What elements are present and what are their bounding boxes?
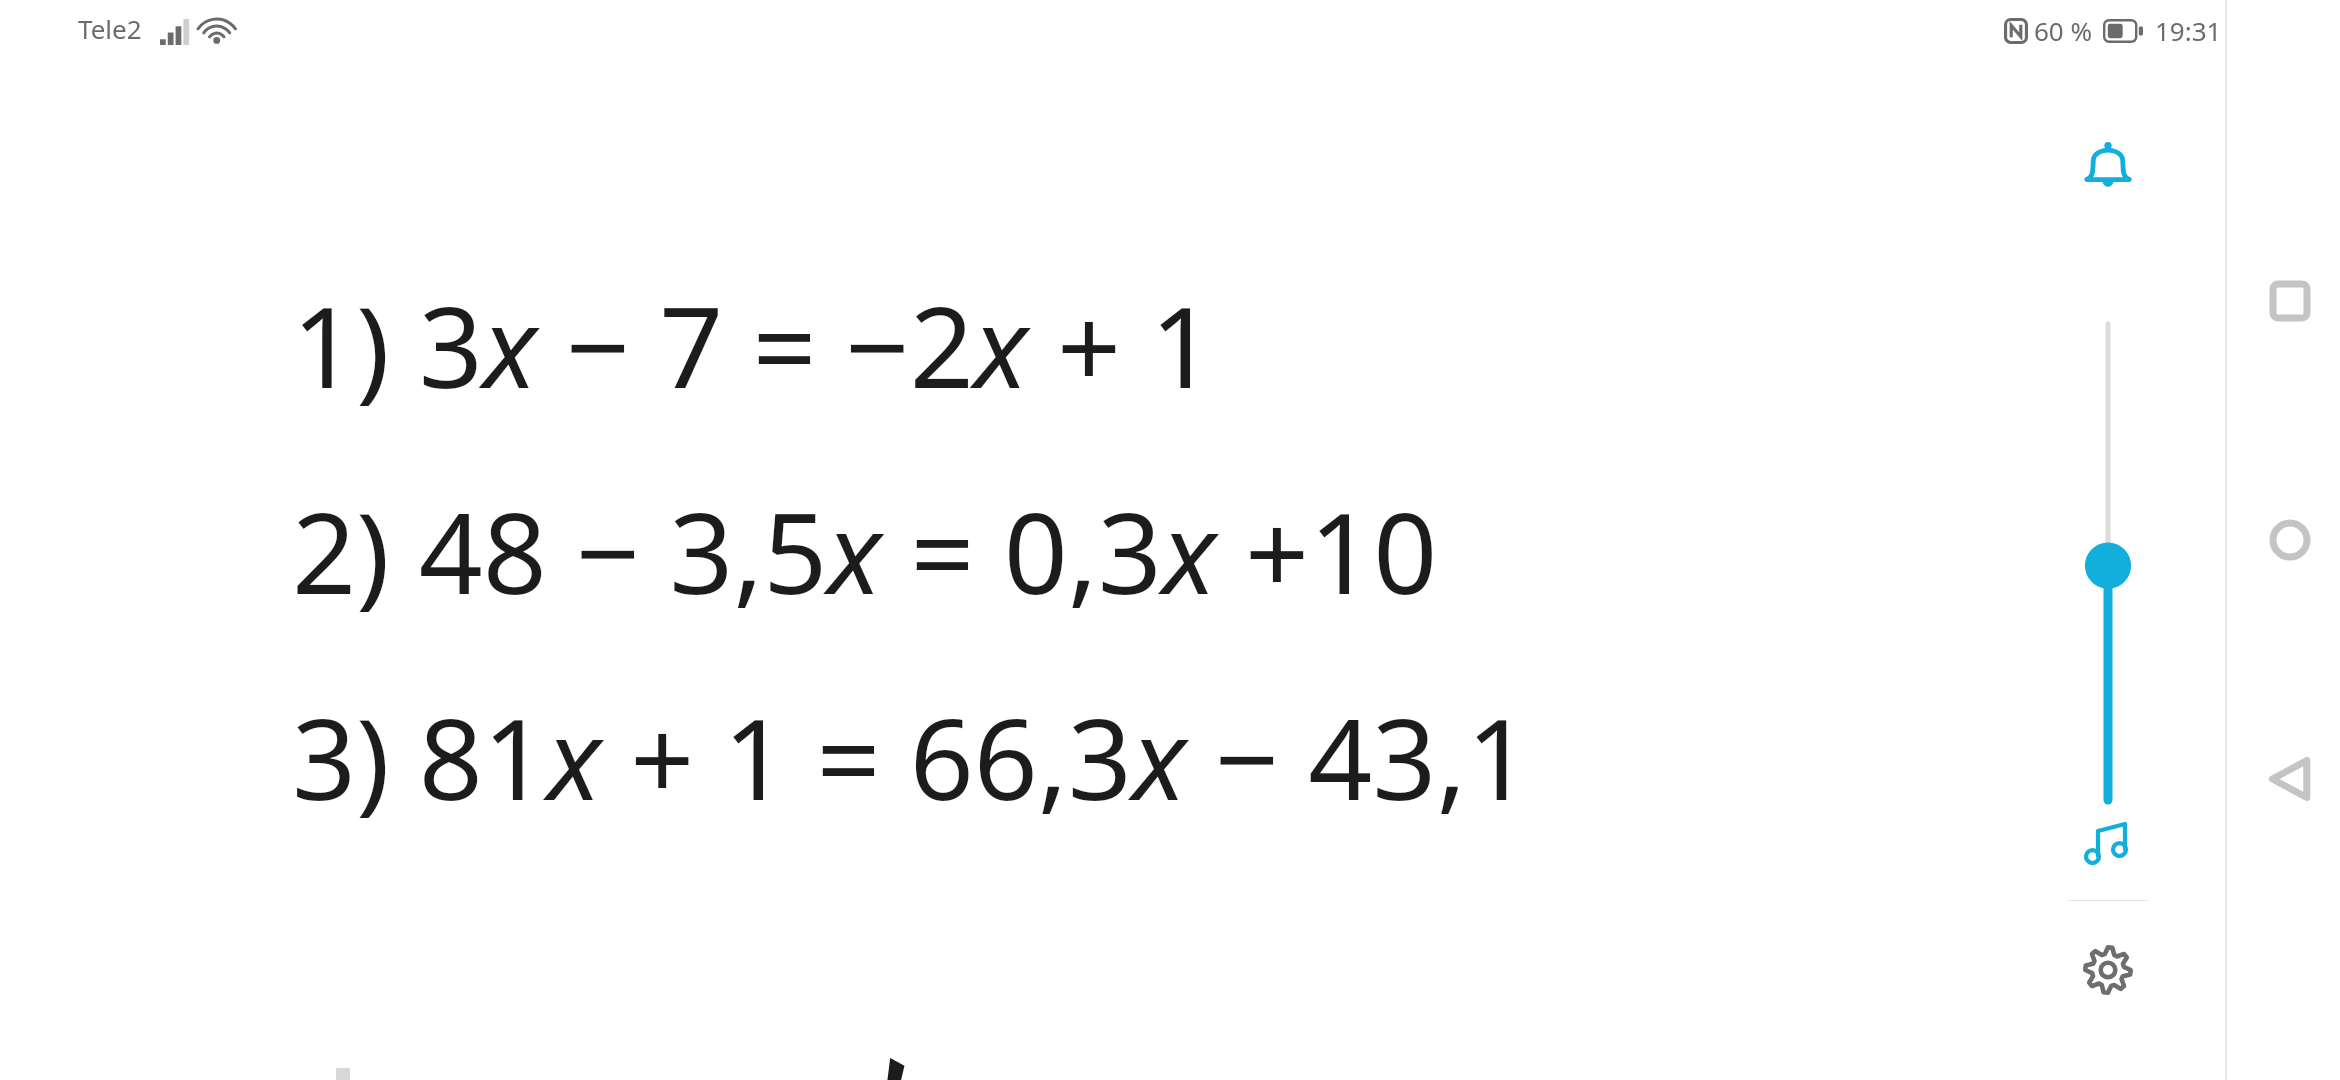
staticText: 60 % — [2034, 13, 2093, 48]
button[interactable]: Back — [2244, 733, 2336, 825]
staticText: Tele2 — [78, 11, 142, 46]
staticText: 1) 3x − 7 = −2x + 1 — [292, 268, 1215, 421]
button[interactable]: Volume slider — [2073, 285, 2143, 800]
button[interactable]: Notifications — [2043, 97, 2172, 233]
staticText: 2) 48 − 3,5x = 0,3x +10 — [292, 474, 1438, 627]
button[interactable]: Recents — [2244, 255, 2336, 347]
button[interactable]: Media volume — [2063, 800, 2153, 890]
button[interactable]: Settings — [2058, 920, 2158, 1020]
staticText: 19:31 — [2155, 13, 2222, 48]
button[interactable]: Home — [2244, 494, 2336, 586]
staticText: 3) 81x + 1 = 66,3x − 43,1 — [292, 680, 1531, 833]
